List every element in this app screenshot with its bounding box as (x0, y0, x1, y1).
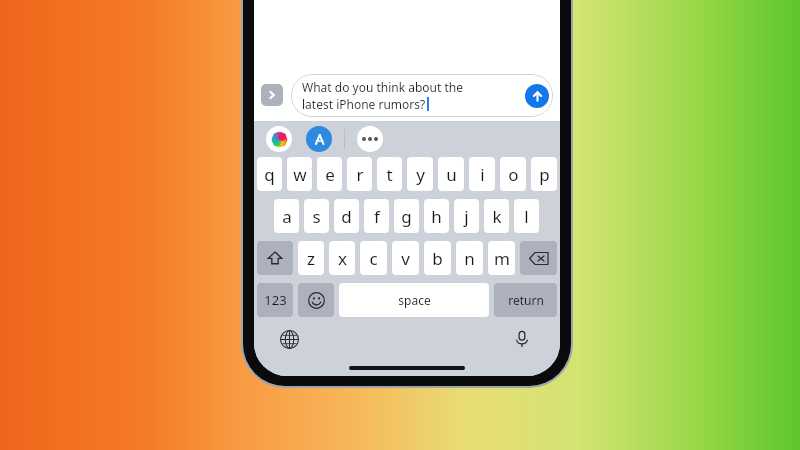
button[interactable]: App Store (306, 126, 332, 152)
staticText: d (341, 205, 352, 228)
button[interactable]: Expand apps (261, 84, 283, 106)
button[interactable]: n (456, 241, 483, 275)
button[interactable]: a (274, 199, 299, 233)
button[interactable]: More apps (357, 126, 383, 152)
staticText: p (539, 163, 550, 186)
staticText: g (401, 205, 412, 228)
staticText: space (398, 292, 431, 308)
button[interactable]: Send (525, 84, 549, 108)
button[interactable]: z (298, 241, 324, 275)
button[interactable]: g (394, 199, 419, 233)
staticText: h (431, 205, 442, 228)
staticText: n (464, 247, 475, 270)
staticText: k (492, 205, 502, 228)
button[interactable]: k (484, 199, 509, 233)
button[interactable]: Emoji (298, 283, 334, 317)
staticText: r (356, 163, 364, 186)
button[interactable]: space (339, 283, 489, 317)
button[interactable]: l (514, 199, 539, 233)
staticText: s (312, 205, 321, 228)
button[interactable]: Photos (266, 126, 292, 152)
button[interactable]: i (469, 157, 495, 191)
staticText: m (494, 247, 510, 270)
staticText: b (432, 247, 443, 270)
button[interactable]: e (317, 157, 342, 191)
button[interactable]: s (304, 199, 329, 233)
staticText: c (369, 247, 378, 270)
staticText: 123 (264, 291, 287, 309)
button[interactable]: c (360, 241, 387, 275)
staticText: x (338, 247, 347, 270)
staticText: y (416, 163, 425, 186)
staticText: j (464, 205, 469, 228)
button[interactable]: 123 (257, 283, 293, 317)
staticText: return (508, 292, 544, 308)
staticText: w (293, 163, 307, 186)
button[interactable]: q (257, 157, 282, 191)
button[interactable]: y (407, 157, 433, 191)
button[interactable]: return (494, 283, 557, 317)
staticText: t (386, 163, 393, 186)
button[interactable]: b (424, 241, 451, 275)
staticText: i (480, 163, 485, 186)
button[interactable]: Change keyboard (276, 326, 302, 352)
button[interactable]: m (488, 241, 515, 275)
staticText: l (524, 205, 529, 228)
staticText: f (374, 205, 380, 228)
staticText: o (508, 163, 519, 186)
button[interactable]: Delete (520, 241, 557, 275)
button[interactable]: v (392, 241, 419, 275)
staticText: latest iPhone rumors? (302, 96, 426, 112)
staticText: e (325, 163, 335, 186)
staticText: v (401, 247, 410, 270)
button[interactable]: j (454, 199, 479, 233)
staticText: z (307, 247, 315, 270)
button[interactable]: u (438, 157, 464, 191)
staticText: a (282, 205, 292, 228)
button[interactable]: What do you think about the (291, 74, 553, 117)
staticText: q (264, 163, 275, 186)
button[interactable]: d (334, 199, 359, 233)
button[interactable]: r (347, 157, 372, 191)
button[interactable]: Shift (257, 241, 293, 275)
button[interactable]: h (424, 199, 449, 233)
staticText: What do you think about the (302, 79, 463, 95)
staticText: u (446, 163, 457, 186)
button[interactable]: w (287, 157, 312, 191)
button[interactable]: p (531, 157, 557, 191)
button[interactable]: x (329, 241, 355, 275)
button[interactable]: f (364, 199, 389, 233)
button[interactable]: Dictation (509, 326, 535, 352)
button[interactable]: o (500, 157, 526, 191)
button[interactable]: t (377, 157, 402, 191)
